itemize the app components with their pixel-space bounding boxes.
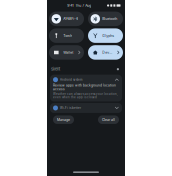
button[interactable]: Wallet: [49, 45, 84, 60]
staticText: Weather can always access your location,…: [53, 92, 118, 99]
button[interactable]: Android system: [50, 75, 122, 101]
staticText: Android system: [60, 78, 82, 81]
button[interactable]: Notification settings: [115, 66, 121, 72]
staticText: Clear all: [102, 118, 115, 122]
staticText: Manage: [57, 118, 70, 122]
staticText: 9:41 Thu 7 Aug: [67, 3, 91, 8]
staticText: Bluetooth: [102, 17, 117, 21]
staticText: Wallet: [63, 50, 73, 55]
staticText: Silent: [51, 67, 60, 71]
button[interactable]: Wi-Fi is better: [50, 103, 122, 113]
staticText: Wi-Fi is better: [60, 106, 81, 110]
staticText: Torch: [63, 34, 72, 38]
button[interactable]: Manage: [53, 115, 74, 124]
button[interactable]: A1-WiFi-6: [49, 12, 84, 26]
staticText: Review apps with background location acc…: [53, 83, 116, 91]
button[interactable]: Bluetooth: [88, 12, 123, 26]
button[interactable]: Glyphs: [88, 28, 123, 43]
button[interactable]: Device co…: [88, 45, 123, 60]
button[interactable]: Clear all: [98, 115, 119, 124]
staticText: Device co…: [102, 50, 113, 55]
staticText: Glyphs: [102, 34, 114, 38]
button[interactable]: Torch: [49, 28, 84, 43]
staticText: A1-WiFi-6: [63, 17, 78, 21]
